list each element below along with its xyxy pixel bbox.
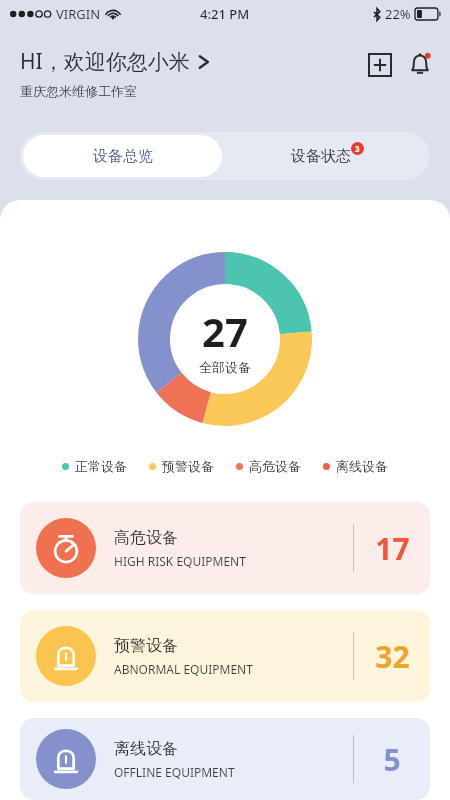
button[interactable]: Notifications bbox=[404, 49, 436, 81]
staticText: OFFLINE EQUIPMENT bbox=[114, 764, 235, 780]
button[interactable]: 设备状态 bbox=[225, 132, 430, 180]
button[interactable]: 离线设备 bbox=[323, 458, 388, 474]
staticText: 预警设备 bbox=[162, 458, 214, 474]
staticText: 22% bbox=[385, 5, 411, 23]
staticText: 正常设备 bbox=[75, 458, 127, 474]
staticText: 5 bbox=[383, 739, 401, 780]
staticText: 高危设备 bbox=[114, 528, 178, 548]
button[interactable]: 正常设备 bbox=[62, 458, 127, 474]
staticText: 高危设备 bbox=[249, 458, 301, 474]
staticText: VIRGIN bbox=[56, 5, 101, 23]
staticText: 3 bbox=[355, 143, 360, 154]
staticText: 32 bbox=[375, 636, 410, 677]
staticText: 重庆忽米维修工作室 bbox=[20, 83, 137, 99]
button[interactable]: 离线设备 bbox=[20, 718, 430, 800]
staticText: 离线设备 bbox=[336, 458, 388, 474]
staticText: 17 bbox=[375, 528, 410, 569]
button[interactable]: Add bbox=[364, 49, 396, 81]
button[interactable]: 高危设备 bbox=[236, 458, 301, 474]
staticText: HI，欢迎你忽小米 bbox=[20, 47, 190, 76]
staticText: HIGH RISK EQUIPMENT bbox=[114, 553, 246, 569]
staticText: 全部设备 bbox=[199, 359, 251, 375]
staticText: 离线设备 bbox=[114, 739, 178, 759]
button[interactable]: 高危设备 bbox=[20, 502, 430, 594]
staticText: 27 bbox=[202, 304, 248, 358]
button[interactable]: 设备总览 bbox=[23, 135, 222, 177]
staticText: 设备状态 bbox=[291, 147, 351, 166]
staticText: 4:21 PM bbox=[200, 5, 250, 23]
button[interactable]: 预警设备 bbox=[20, 610, 430, 702]
staticText: 设备总览 bbox=[93, 147, 153, 166]
staticText: 预警设备 bbox=[114, 636, 178, 656]
staticText: ABNORMAL EQUIPMENT bbox=[114, 661, 253, 677]
button[interactable]: 预警设备 bbox=[149, 458, 214, 474]
button[interactable]: HI，欢迎你忽小米 bbox=[20, 47, 210, 99]
